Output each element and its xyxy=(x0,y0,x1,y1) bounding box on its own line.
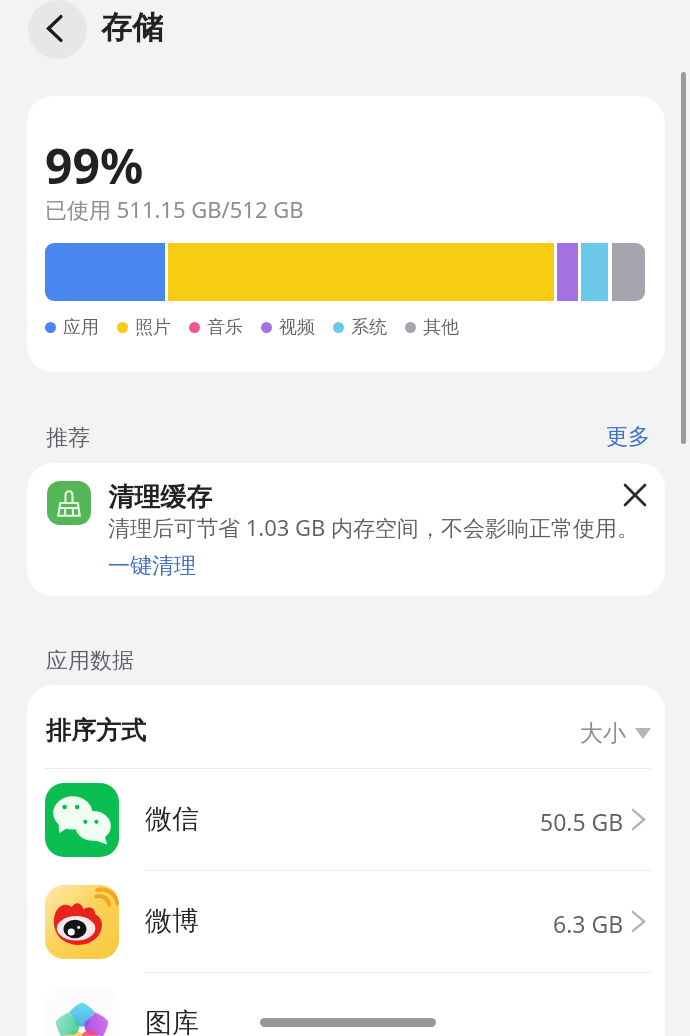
button[interactable]: 图库 xyxy=(27,973,665,1036)
staticText: 清理缓存 xyxy=(108,481,212,514)
staticText: 视频 xyxy=(279,316,315,339)
staticText: 已使用 511.15 GB/512 GB xyxy=(45,194,304,224)
staticText: 音乐 xyxy=(207,316,243,339)
button[interactable]: 清理缓存 xyxy=(27,463,665,596)
staticText: 微信 xyxy=(145,802,199,836)
staticText: 6.3 GB xyxy=(553,908,624,938)
button[interactable]: Close xyxy=(613,473,657,517)
staticText: 应用 xyxy=(63,316,99,339)
staticText: 排序方式 xyxy=(46,715,146,746)
staticText: 99% xyxy=(45,133,144,198)
button[interactable]: Back xyxy=(28,0,87,59)
button[interactable]: 更多 xyxy=(600,417,656,457)
staticText: 系统 xyxy=(351,316,387,339)
staticText: 推荐 xyxy=(46,424,90,452)
button[interactable]: 排序方式 xyxy=(27,685,665,768)
staticText: 微博 xyxy=(145,904,199,938)
staticText: 50.5 GB xyxy=(540,806,624,836)
staticText: 大小 xyxy=(580,719,626,748)
staticText: 图库 xyxy=(145,1006,199,1036)
staticText: 存储 xyxy=(101,8,163,47)
staticText: 照片 xyxy=(135,316,171,339)
button[interactable]: 一键清理 xyxy=(108,552,196,580)
staticText: 应用数据 xyxy=(46,647,134,675)
staticText: 清理后可节省 1.03 GB 内存空间，不会影响正常使用。 xyxy=(108,512,640,542)
button[interactable]: 微信 xyxy=(27,769,665,871)
staticText: 其他 xyxy=(423,316,459,339)
button[interactable]: 微博 xyxy=(27,871,665,973)
staticText: 一键清理 xyxy=(108,552,196,580)
staticText: 更多 xyxy=(606,423,650,451)
